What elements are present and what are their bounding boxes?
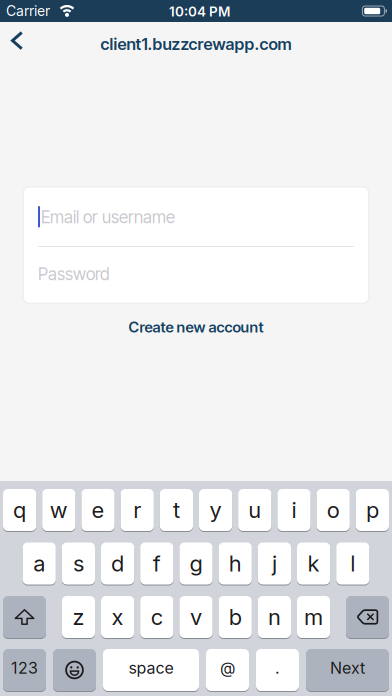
staticText: h xyxy=(229,550,242,577)
button[interactable]: w xyxy=(42,489,75,531)
button[interactable]: x xyxy=(101,596,134,638)
staticText: r xyxy=(133,497,141,523)
button[interactable]: Email or username xyxy=(24,187,368,245)
staticText: Carrier xyxy=(6,2,50,19)
staticText: m xyxy=(304,604,323,630)
button[interactable]: Emoji xyxy=(53,649,96,691)
button[interactable]: n xyxy=(258,596,291,638)
staticText: . xyxy=(275,658,280,678)
button[interactable]: q xyxy=(3,489,36,531)
staticText: d xyxy=(111,550,124,577)
button[interactable]: . xyxy=(256,649,299,691)
button[interactable]: m xyxy=(297,596,330,638)
button[interactable]: e xyxy=(81,489,115,531)
button[interactable]: Next xyxy=(306,649,389,691)
button[interactable]: d xyxy=(101,542,134,584)
staticText: c xyxy=(151,604,163,630)
staticText: j xyxy=(272,550,277,577)
button[interactable]: v xyxy=(179,596,213,638)
button[interactable]: Delete xyxy=(346,596,389,638)
staticText: q xyxy=(13,497,26,523)
staticText: w xyxy=(50,497,68,523)
staticText: b xyxy=(229,604,242,630)
staticText: z xyxy=(72,604,84,630)
staticText: @ xyxy=(220,658,235,678)
staticText: y xyxy=(210,497,222,523)
button[interactable]: u xyxy=(238,489,271,531)
button[interactable]: 123 xyxy=(3,649,46,691)
staticText: client1.buzzcrewapp.com xyxy=(100,34,291,54)
button[interactable]: Create new account xyxy=(128,318,263,336)
button[interactable]: f xyxy=(140,542,173,584)
staticText: s xyxy=(73,550,84,577)
staticText: Password xyxy=(38,264,110,284)
staticText: v xyxy=(190,604,202,630)
staticText: x xyxy=(112,604,124,630)
button[interactable]: Shift xyxy=(3,596,46,638)
staticText: o xyxy=(327,497,340,523)
button[interactable]: p xyxy=(356,489,389,531)
staticText: k xyxy=(308,550,320,577)
button[interactable]: a xyxy=(23,542,56,584)
staticText: i xyxy=(291,497,296,523)
button[interactable]: b xyxy=(219,596,252,638)
button[interactable]: o xyxy=(317,489,350,531)
staticText: u xyxy=(248,497,261,523)
button[interactable]: space xyxy=(103,649,199,691)
button[interactable]: j xyxy=(258,542,291,584)
button[interactable]: g xyxy=(179,542,213,584)
button[interactable]: s xyxy=(62,542,95,584)
button[interactable]: y xyxy=(199,489,232,531)
button[interactable]: t xyxy=(160,489,193,531)
button[interactable]: @ xyxy=(206,649,249,691)
staticText: n xyxy=(268,604,281,630)
button[interactable]: z xyxy=(62,596,95,638)
staticText: p xyxy=(366,497,379,523)
staticText: space xyxy=(128,658,173,678)
staticText: Email or username xyxy=(41,207,175,227)
button[interactable]: r xyxy=(121,489,154,531)
staticText: 10:04 PM xyxy=(169,3,230,20)
staticText: Create new account xyxy=(128,318,263,336)
button[interactable]: l xyxy=(336,542,369,584)
staticText: e xyxy=(91,497,104,523)
button[interactable]: Back xyxy=(0,22,32,57)
button[interactable]: k xyxy=(297,542,330,584)
button[interactable]: h xyxy=(219,542,252,584)
staticText: t xyxy=(173,497,180,523)
button[interactable]: Password xyxy=(24,246,368,302)
staticText: a xyxy=(33,550,45,577)
button[interactable]: i xyxy=(277,489,311,531)
staticText: g xyxy=(189,550,202,577)
staticText: Next xyxy=(330,658,365,678)
button[interactable]: c xyxy=(140,596,173,638)
staticText: 123 xyxy=(11,658,38,678)
staticText: f xyxy=(153,550,161,577)
staticText: l xyxy=(350,550,355,577)
